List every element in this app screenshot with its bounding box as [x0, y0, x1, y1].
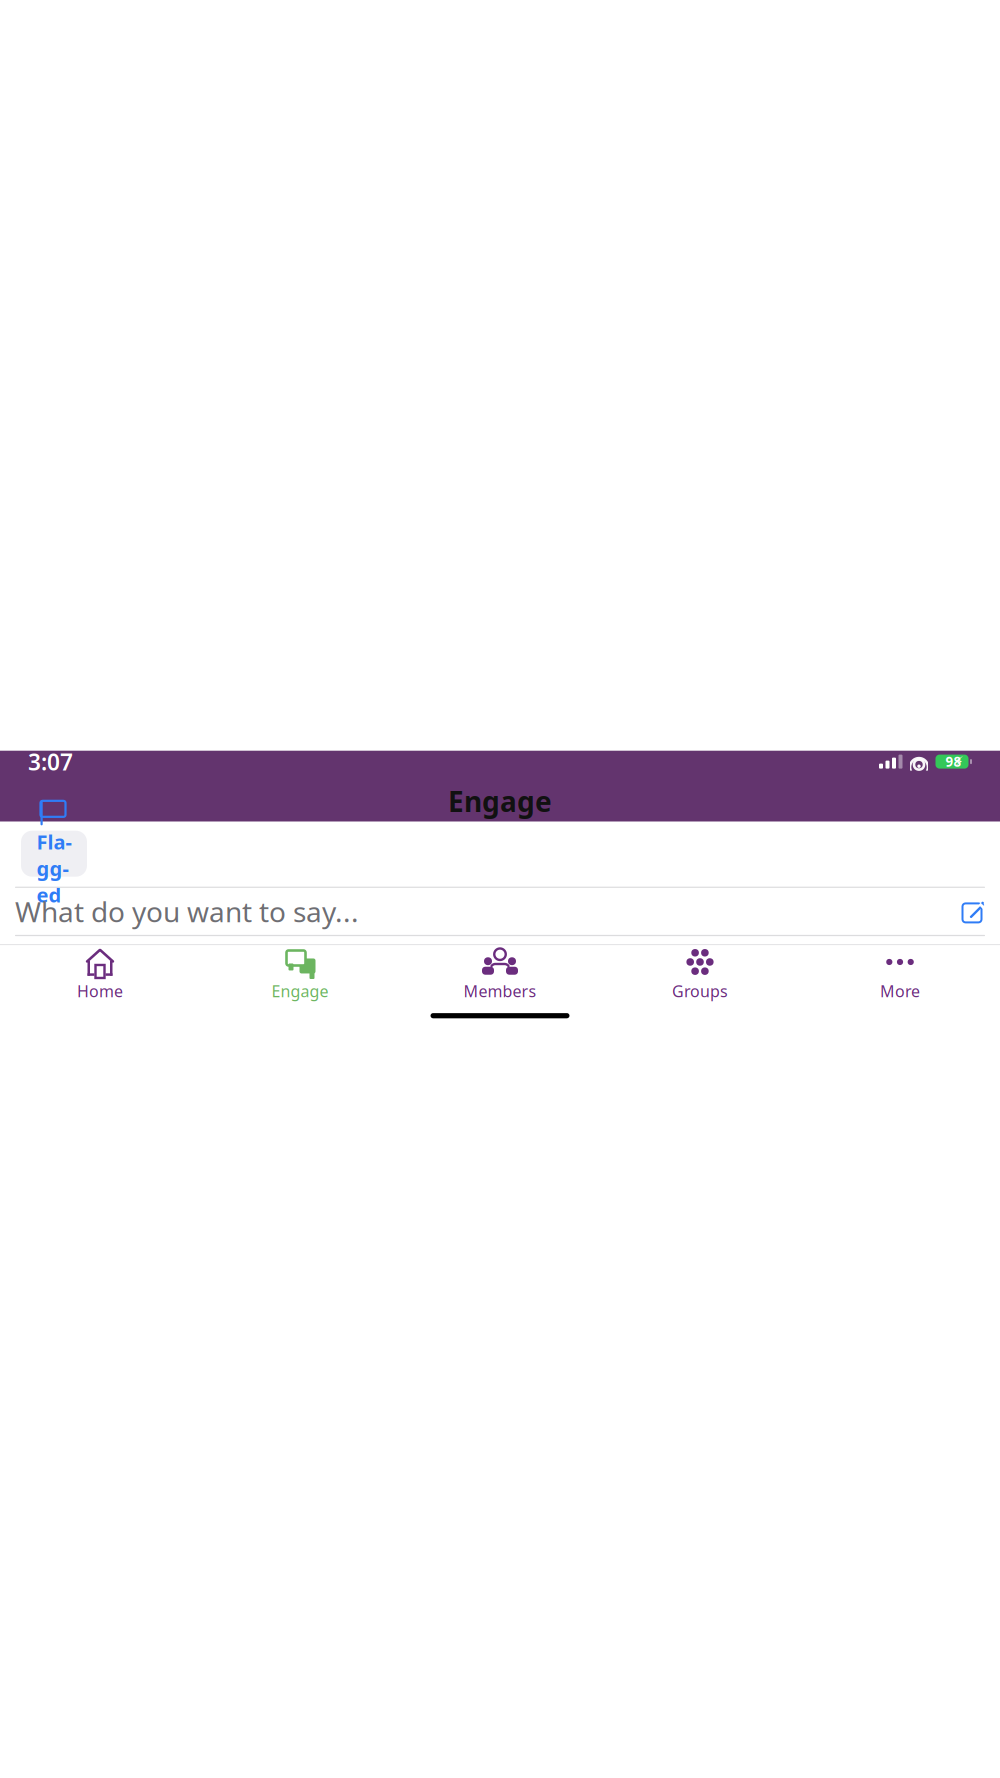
- staticText: Home: [77, 980, 123, 1002]
- button[interactable]: What do you want to say...: [0, 888, 1000, 935]
- button[interactable]: Members: [400, 940, 600, 1006]
- staticText: More: [880, 980, 920, 1002]
- button[interactable]: Engage: [200, 940, 400, 1006]
- staticText: What do you want to say...: [15, 893, 359, 930]
- button[interactable]: More: [800, 940, 1000, 1006]
- staticText: ⚡︎: [954, 754, 963, 769]
- staticText: Groups: [672, 980, 728, 1002]
- staticText: Flagged: [36, 828, 71, 908]
- button[interactable]: Flagged: [21, 831, 87, 877]
- staticText: Engage: [448, 783, 552, 820]
- staticText: Members: [463, 980, 536, 1002]
- button[interactable]: Home: [0, 940, 200, 1006]
- staticText: 3:07: [28, 747, 73, 777]
- staticText: Engage: [271, 980, 328, 1002]
- button[interactable]: Groups: [600, 940, 800, 1006]
- staticText: 98: [945, 753, 961, 770]
